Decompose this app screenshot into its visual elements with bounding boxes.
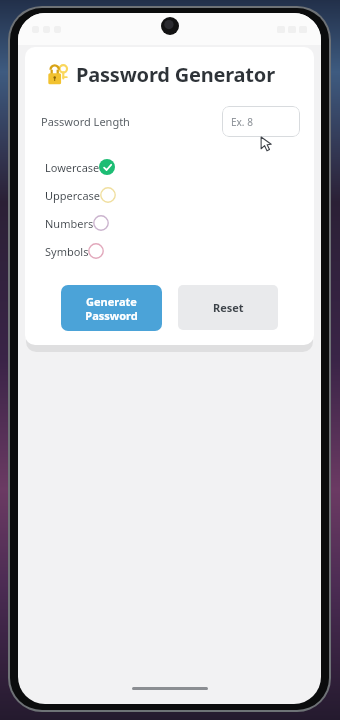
button[interactable]: Reset — [178, 285, 278, 330]
button[interactable]: Lowercase — [41, 159, 120, 175]
staticText: Uppercase — [45, 188, 101, 203]
staticText: Lowercase — [45, 160, 100, 175]
staticText: Password Generator — [76, 61, 275, 88]
staticText: Numbers — [45, 216, 94, 231]
staticText: Generate Password — [85, 294, 138, 323]
staticText: Password Length — [41, 114, 130, 129]
staticText: Reset — [213, 300, 244, 315]
staticText: Symbols — [45, 244, 89, 259]
button[interactable]: Numbers — [41, 215, 114, 231]
button[interactable]: Ex. 8 — [222, 106, 300, 137]
staticText: Ex. 8 — [231, 115, 253, 129]
button[interactable]: Symbols — [41, 243, 109, 259]
button[interactable]: Generate Password — [61, 285, 162, 331]
button[interactable]: Uppercase — [41, 187, 121, 203]
